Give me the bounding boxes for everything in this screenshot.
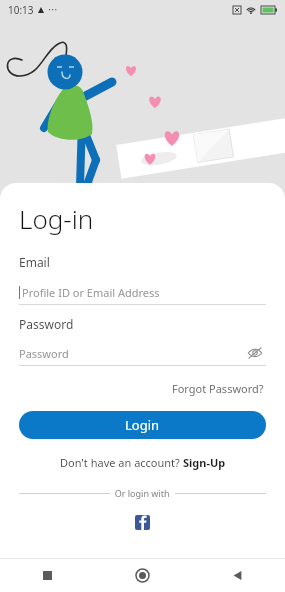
- staticText: Sign-Up: [183, 455, 226, 470]
- staticText: 10:13: [8, 3, 34, 17]
- button[interactable]: Back: [190, 559, 285, 592]
- button[interactable]: Home: [95, 559, 190, 592]
- staticText: Email: [19, 254, 50, 270]
- staticText: Or login with: [110, 487, 175, 499]
- staticText: Forgot Password?: [172, 381, 264, 396]
- button[interactable]: Login: [19, 411, 266, 439]
- button[interactable]: Login with Facebook: [135, 515, 150, 530]
- button[interactable]: Password: [19, 341, 266, 365]
- staticText: Don't have an account?: [60, 455, 183, 470]
- button[interactable]: Don't have an account?: [60, 455, 226, 470]
- button[interactable]: Recent apps: [0, 559, 95, 592]
- staticText: Profile ID or Email Address: [22, 285, 160, 300]
- button[interactable]: Show password: [244, 342, 266, 364]
- staticText: Login: [125, 416, 160, 434]
- staticText: Password: [19, 346, 244, 361]
- staticText: Password: [19, 316, 74, 332]
- staticText: ⋯: [48, 4, 58, 16]
- staticText: Log-in: [19, 201, 94, 236]
- button[interactable]: Forgot Password?: [170, 379, 266, 398]
- button[interactable]: Profile ID or Email Address: [19, 280, 266, 304]
